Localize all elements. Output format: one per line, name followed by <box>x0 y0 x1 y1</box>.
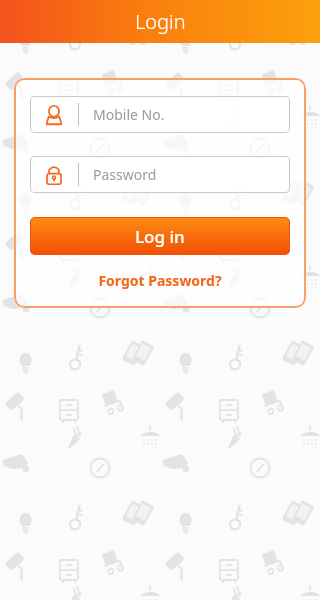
staticText: Log in <box>135 225 185 248</box>
staticText: Forgot Password? <box>98 271 222 290</box>
button[interactable]: Password <box>30 156 290 193</box>
staticText: Mobile No. <box>93 105 165 124</box>
staticText: Login <box>135 8 186 35</box>
staticText: Password <box>93 165 157 184</box>
button[interactable]: Log in <box>30 217 290 255</box>
button[interactable]: Forgot Password? <box>30 271 290 290</box>
button[interactable]: Mobile number <box>30 96 290 133</box>
